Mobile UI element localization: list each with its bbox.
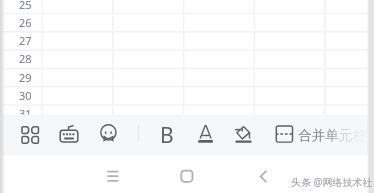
button[interactable]: Back <box>243 157 283 193</box>
button[interactable]: Keyboard <box>49 115 89 155</box>
button[interactable]: Merge cells <box>264 115 374 155</box>
button[interactable]: Text color <box>186 115 224 155</box>
button[interactable]: Bold <box>148 115 186 155</box>
staticText: 27 <box>19 33 32 48</box>
staticText: 29 <box>19 70 32 85</box>
button[interactable]: Fill color <box>224 115 264 155</box>
button[interactable]: Emoji <box>88 115 128 155</box>
button[interactable]: Home <box>167 157 207 193</box>
staticText: 合并单元格 <box>298 127 367 144</box>
staticText: 25 <box>19 0 32 12</box>
staticText: 30 <box>19 88 32 103</box>
staticText: 31 <box>19 106 32 115</box>
staticText: B <box>160 121 174 150</box>
button[interactable]: Recents <box>93 157 133 193</box>
staticText: 28 <box>19 51 32 66</box>
button[interactable]: Insert <box>10 115 50 155</box>
staticText: 头条 @网络技术社 <box>291 175 373 189</box>
staticText: 26 <box>19 15 32 30</box>
